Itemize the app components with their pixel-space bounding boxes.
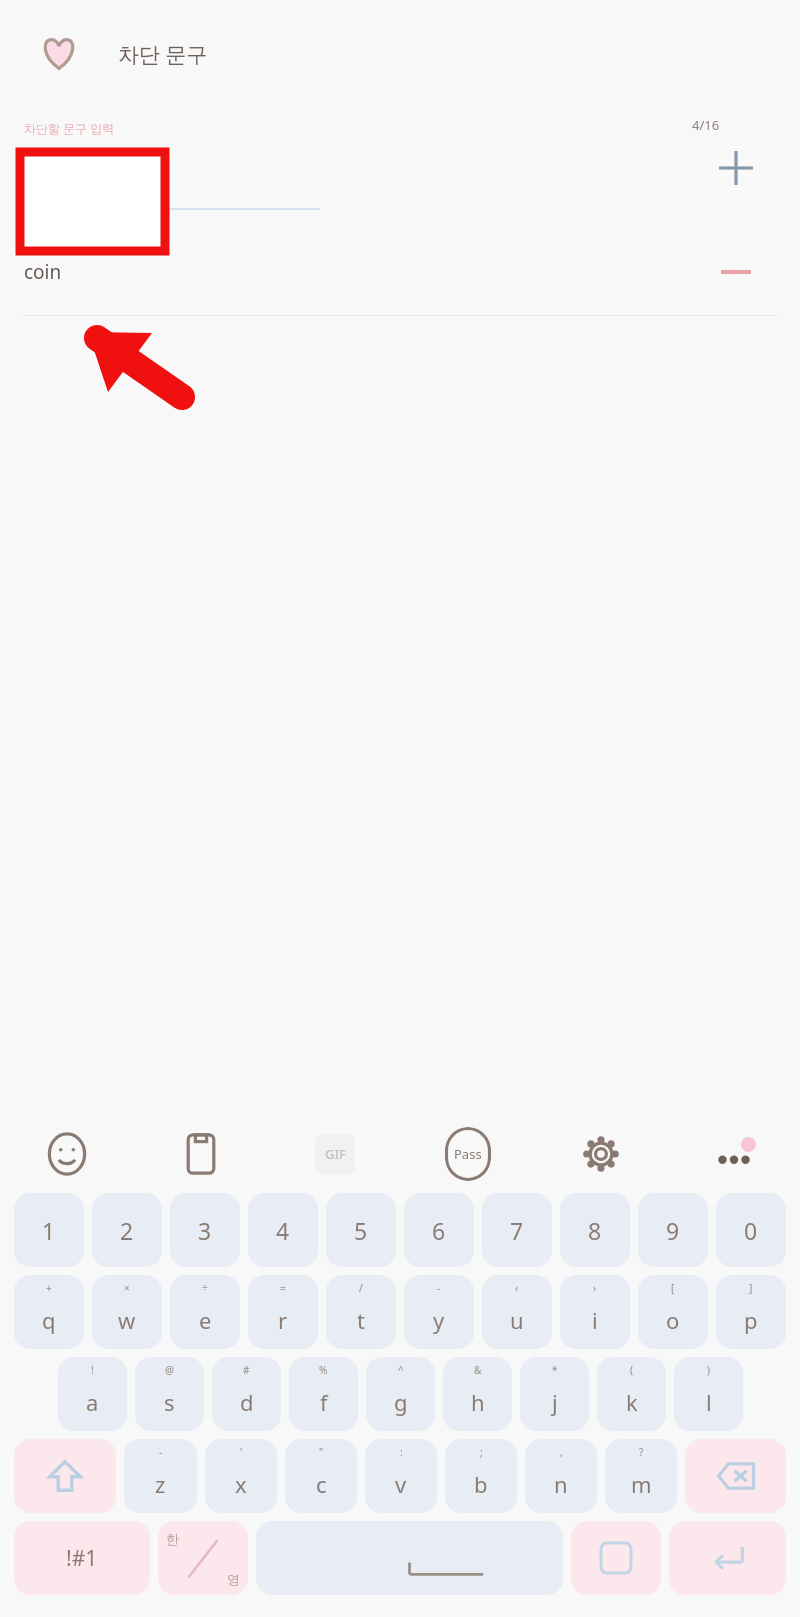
staticText: d	[240, 1387, 254, 1417]
button[interactable]: =	[248, 1275, 318, 1349]
staticText: k	[626, 1387, 638, 1417]
staticText: ^	[398, 1363, 404, 1377]
staticText: u	[510, 1305, 524, 1335]
button[interactable]: ×	[92, 1275, 162, 1349]
staticText: m	[631, 1469, 652, 1499]
button[interactable]	[14, 1439, 116, 1513]
staticText: 5	[354, 1215, 368, 1246]
staticText: -	[159, 1445, 163, 1459]
staticText: :	[400, 1445, 403, 1459]
staticText: %	[319, 1363, 328, 1377]
staticText: 8	[588, 1215, 602, 1246]
button[interactable]: 8	[560, 1193, 630, 1267]
button[interactable]	[256, 1521, 563, 1595]
button[interactable]: ÷	[170, 1275, 240, 1349]
button[interactable]: Emoji	[0, 1115, 134, 1193]
button[interactable]: /	[326, 1275, 396, 1349]
button[interactable]: &	[443, 1357, 512, 1431]
staticText: q	[42, 1305, 56, 1335]
button[interactable]: "	[285, 1439, 357, 1513]
staticText: ×	[124, 1281, 130, 1295]
staticText: 4	[276, 1215, 290, 1246]
button[interactable]: coin	[0, 228, 800, 316]
staticText: 7	[510, 1215, 524, 1246]
button[interactable]: !#1	[14, 1521, 150, 1595]
button[interactable]: '	[205, 1439, 277, 1513]
button[interactable]: 차단 문구	[0, 0, 800, 108]
staticText: 3	[198, 1215, 212, 1246]
button[interactable]: @	[135, 1357, 204, 1431]
button[interactable]: Add blocked phrase	[710, 142, 762, 194]
staticText: w	[118, 1305, 136, 1335]
staticText: b	[474, 1469, 488, 1499]
button[interactable]: ‹	[482, 1275, 552, 1349]
button[interactable]: 1	[14, 1193, 84, 1267]
staticText: 1	[42, 1215, 56, 1246]
staticText: =	[280, 1281, 286, 1295]
staticText: +	[46, 1281, 52, 1295]
button[interactable]: )	[674, 1357, 743, 1431]
button[interactable]: 6	[404, 1193, 474, 1267]
button[interactable]: [	[638, 1275, 708, 1349]
button[interactable]: GIF	[268, 1115, 401, 1193]
staticText: f	[320, 1387, 328, 1417]
button[interactable]: Clipboard	[134, 1115, 268, 1193]
staticText: c	[316, 1469, 327, 1499]
button[interactable]: ›	[560, 1275, 630, 1349]
button[interactable]: 2	[92, 1193, 162, 1267]
button[interactable]: ?	[605, 1439, 677, 1513]
staticText: r	[278, 1305, 288, 1335]
staticText: GIF	[325, 1145, 346, 1163]
staticText: (	[630, 1363, 633, 1377]
staticText: '	[240, 1445, 243, 1459]
button[interactable]: 9	[638, 1193, 708, 1267]
button[interactable]: Settings	[534, 1115, 667, 1193]
staticText: g	[394, 1387, 408, 1417]
button[interactable]: 7	[482, 1193, 552, 1267]
staticText: 0	[744, 1215, 758, 1246]
staticText: !#1	[66, 1544, 98, 1573]
button[interactable]	[685, 1439, 786, 1513]
button[interactable]: 5	[326, 1193, 396, 1267]
staticText: .com	[24, 148, 70, 175]
button[interactable]: !	[58, 1357, 127, 1431]
button[interactable]: Pass	[401, 1115, 534, 1193]
button[interactable]: Remove coin	[710, 246, 762, 298]
button[interactable]: ^	[366, 1357, 435, 1431]
button[interactable]: 4	[248, 1193, 318, 1267]
staticText: ‹	[515, 1281, 519, 1295]
staticText: i	[592, 1305, 598, 1335]
button[interactable]	[571, 1521, 661, 1595]
button[interactable]: #	[212, 1357, 281, 1431]
button[interactable]: (	[597, 1357, 666, 1431]
staticText: Pass	[454, 1145, 482, 1163]
staticText: @	[165, 1363, 174, 1377]
button[interactable]: :	[365, 1439, 437, 1513]
button[interactable]: More	[667, 1115, 800, 1193]
staticText: ,	[560, 1445, 563, 1459]
button[interactable]: -	[124, 1439, 197, 1513]
button[interactable]	[669, 1521, 786, 1595]
button[interactable]: +	[14, 1275, 84, 1349]
staticText: 영	[227, 1571, 240, 1587]
staticText: !	[91, 1363, 94, 1377]
staticText: ÷	[202, 1281, 208, 1295]
button[interactable]: %	[289, 1357, 358, 1431]
staticText: 9	[666, 1215, 680, 1246]
staticText: ]	[749, 1281, 753, 1295]
staticText: 6	[432, 1215, 446, 1246]
button[interactable]: ;	[445, 1439, 517, 1513]
staticText: t	[357, 1305, 365, 1335]
staticText: s	[164, 1387, 175, 1417]
button[interactable]: ]	[716, 1275, 786, 1349]
staticText: x	[235, 1469, 247, 1499]
button[interactable]: 3	[170, 1193, 240, 1267]
button[interactable]: 한	[158, 1521, 248, 1595]
staticText: h	[471, 1387, 485, 1417]
button[interactable]: ,	[525, 1439, 597, 1513]
staticText: ?	[639, 1445, 644, 1459]
button[interactable]: -	[404, 1275, 474, 1349]
staticText: coin	[24, 259, 62, 285]
button[interactable]: *	[520, 1357, 589, 1431]
button[interactable]: 0	[716, 1193, 786, 1267]
